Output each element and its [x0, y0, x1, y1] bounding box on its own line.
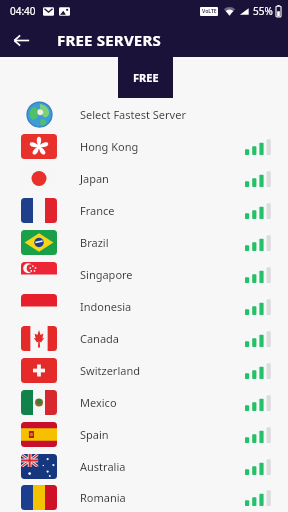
button[interactable]: Select Fastest Server [0, 98, 288, 130]
staticText: Indonesia [80, 299, 132, 314]
button[interactable]: Mexico [0, 386, 288, 418]
button[interactable]: Singapore [0, 258, 288, 290]
button[interactable]: Spain [0, 418, 288, 450]
button[interactable]: Japan [0, 162, 288, 194]
staticText: France [80, 203, 115, 218]
staticText: FREE [133, 70, 159, 85]
button[interactable]: Hong Kong [0, 130, 288, 162]
button[interactable]: Canada [0, 322, 288, 354]
staticText: 04:40 [10, 4, 36, 18]
button[interactable]: France [0, 194, 288, 226]
staticText: 55% [253, 4, 273, 18]
staticText: Japan [80, 171, 109, 186]
staticText: Mexico [80, 395, 117, 410]
button[interactable]: FREE [118, 57, 173, 98]
staticText: Brazil [80, 235, 109, 250]
staticText: Switzerland [80, 363, 140, 378]
button[interactable]: Australia [0, 450, 288, 482]
staticText: Canada [80, 331, 120, 346]
button[interactable]: Indonesia [0, 290, 288, 322]
staticText: Australia [80, 459, 126, 474]
button[interactable]: Switzerland [0, 354, 288, 386]
button[interactable]: Brazil [0, 226, 288, 258]
staticText: Hong Kong [80, 139, 139, 154]
staticText: Spain [80, 427, 109, 442]
staticText: Select Fastest Server [80, 107, 186, 122]
staticText: FREE SERVERS [57, 30, 161, 50]
staticText: Romania [80, 490, 126, 505]
button[interactable]: Back [9, 28, 33, 52]
staticText: VoLTE [202, 8, 217, 15]
button[interactable]: Romania [0, 482, 288, 512]
staticText: Singapore [80, 267, 133, 282]
